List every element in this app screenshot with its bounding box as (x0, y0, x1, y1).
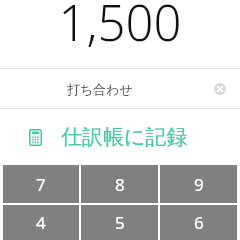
other: Calculator (29, 129, 42, 146)
staticText: 9 (194, 173, 204, 196)
staticText: 5 (115, 211, 125, 234)
button[interactable]: Clear text (200, 68, 240, 109)
button[interactable]: 5 (81, 205, 158, 240)
staticText: 8 (115, 173, 125, 196)
staticText: 6 (194, 211, 204, 234)
button[interactable]: 8 (81, 165, 158, 203)
staticText: 1,500 (0, 0, 240, 56)
button[interactable]: 7 (3, 165, 79, 203)
button[interactable]: 4 (3, 205, 79, 240)
button[interactable]: 打ち合わせ (0, 68, 240, 109)
button[interactable]: 6 (160, 205, 237, 240)
button[interactable]: Calculator (0, 109, 240, 165)
staticText: 打ち合わせ (67, 81, 133, 97)
staticText: 4 (36, 211, 46, 234)
staticText: 7 (36, 173, 46, 196)
staticText: 仕訳帳に記録 (61, 124, 188, 150)
button[interactable]: 9 (160, 165, 237, 203)
